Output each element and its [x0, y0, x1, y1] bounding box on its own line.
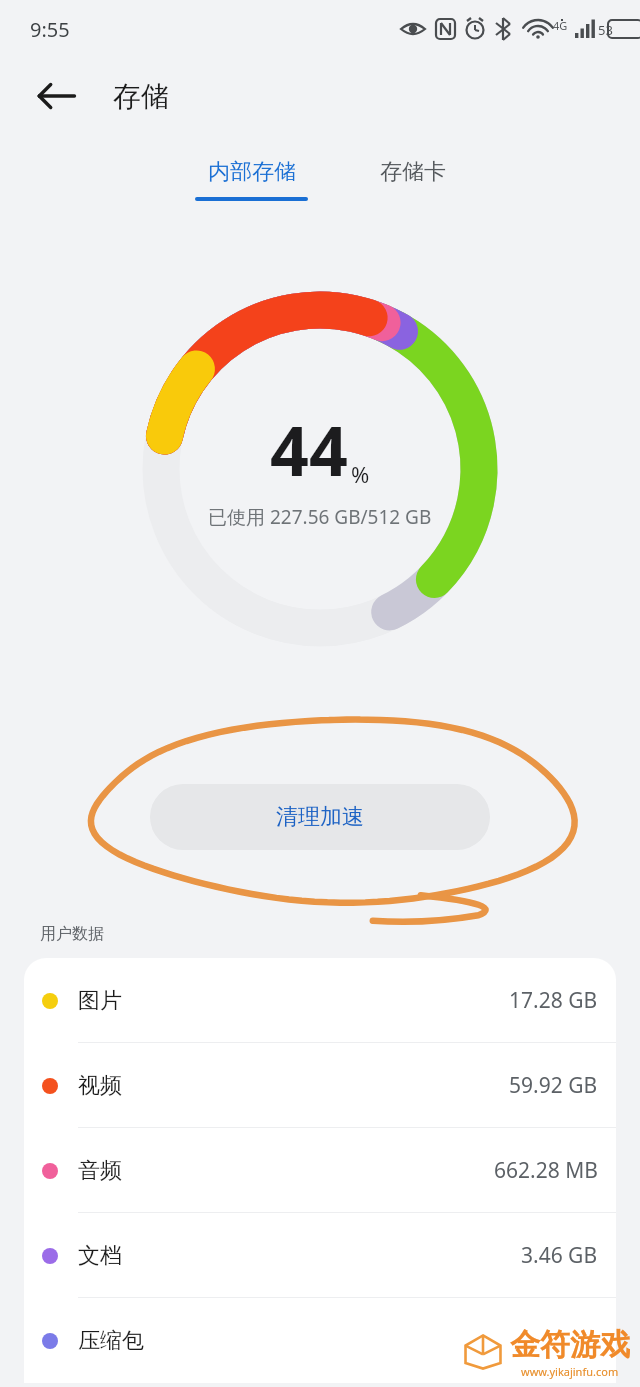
staticText: 59.92 GB — [509, 1071, 598, 1100]
staticText: www.yikajinfu.com — [521, 1364, 619, 1379]
button[interactable]: 压缩包 — [24, 1298, 616, 1383]
staticText: 内部存储 — [208, 158, 296, 186]
staticText: 图片 — [78, 987, 122, 1015]
staticText: 已使用 227.56 GB/512 GB — [208, 504, 432, 530]
button[interactable]: 音频 — [24, 1128, 616, 1213]
staticText: 4G — [553, 18, 568, 33]
button[interactable]: 内部存储 — [185, 152, 318, 207]
staticText: 金符游戏 — [510, 1326, 630, 1364]
button[interactable]: Back — [34, 74, 78, 118]
staticText: 存储 — [113, 79, 169, 114]
staticText: 662.28 MB — [494, 1156, 598, 1185]
staticText: 3.46 GB — [521, 1241, 598, 1270]
button[interactable]: 存储卡 — [370, 152, 456, 192]
staticText: 44 — [270, 403, 348, 496]
staticText: % — [351, 459, 370, 489]
staticText: 存储卡 — [380, 158, 446, 186]
button[interactable]: 视频 — [24, 1043, 616, 1128]
staticText: 53 — [598, 21, 613, 39]
staticText: 音频 — [78, 1157, 122, 1185]
button[interactable]: 图片 — [24, 958, 616, 1043]
staticText: 视频 — [78, 1072, 122, 1100]
staticText: 9:55 — [30, 16, 70, 43]
staticText: 清理加速 — [276, 803, 364, 831]
staticText: 文档 — [78, 1242, 122, 1270]
button[interactable]: 文档 — [24, 1213, 616, 1298]
button[interactable]: 清理加速 — [150, 784, 490, 850]
staticText: 用户数据 — [40, 924, 104, 944]
staticText: 压缩包 — [78, 1327, 144, 1355]
staticText: 17.28 GB — [509, 986, 598, 1015]
